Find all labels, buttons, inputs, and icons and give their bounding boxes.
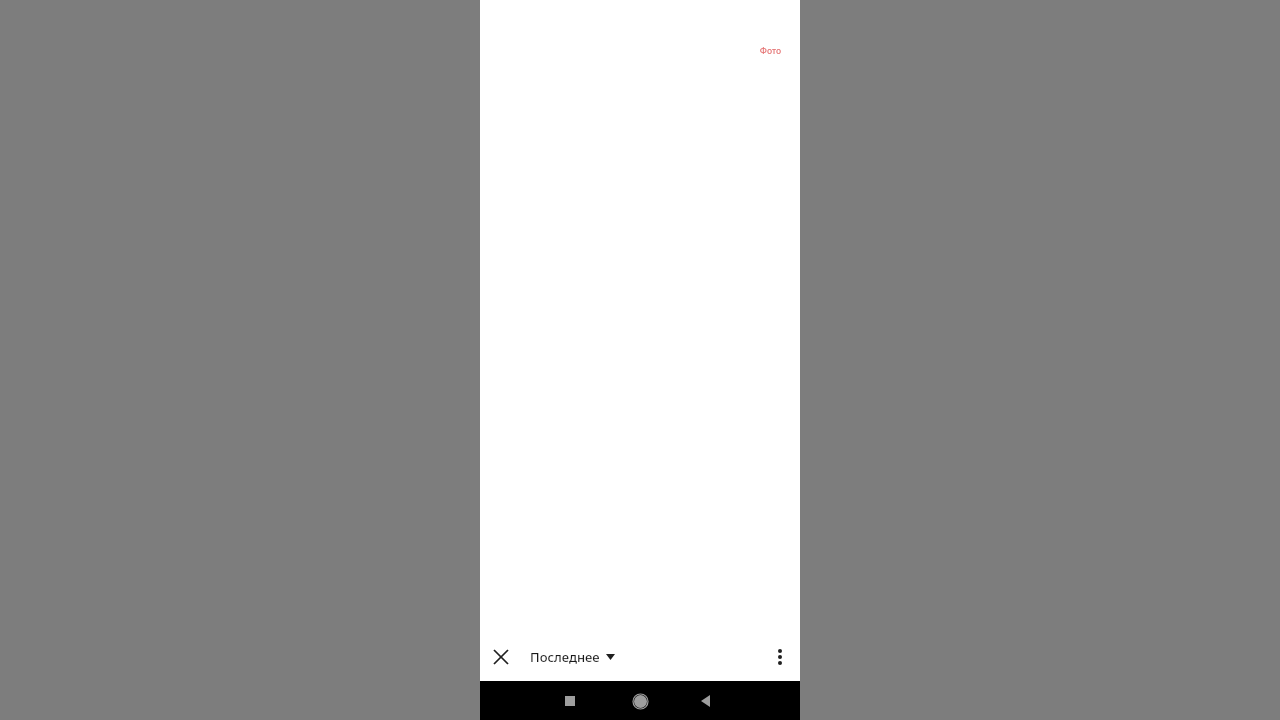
button[interactable]: Обзор: [553, 684, 587, 718]
button[interactable]: Фото: [759, 45, 781, 57]
button[interactable]: Ещё: [766, 643, 794, 671]
button[interactable]: Закрыть: [487, 643, 515, 671]
staticText: Фото: [759, 45, 781, 57]
button[interactable]: Назад: [688, 684, 722, 718]
staticText: Последнее: [530, 648, 600, 666]
button[interactable]: Главный экран: [623, 684, 657, 718]
button[interactable]: Последнее: [530, 639, 615, 675]
